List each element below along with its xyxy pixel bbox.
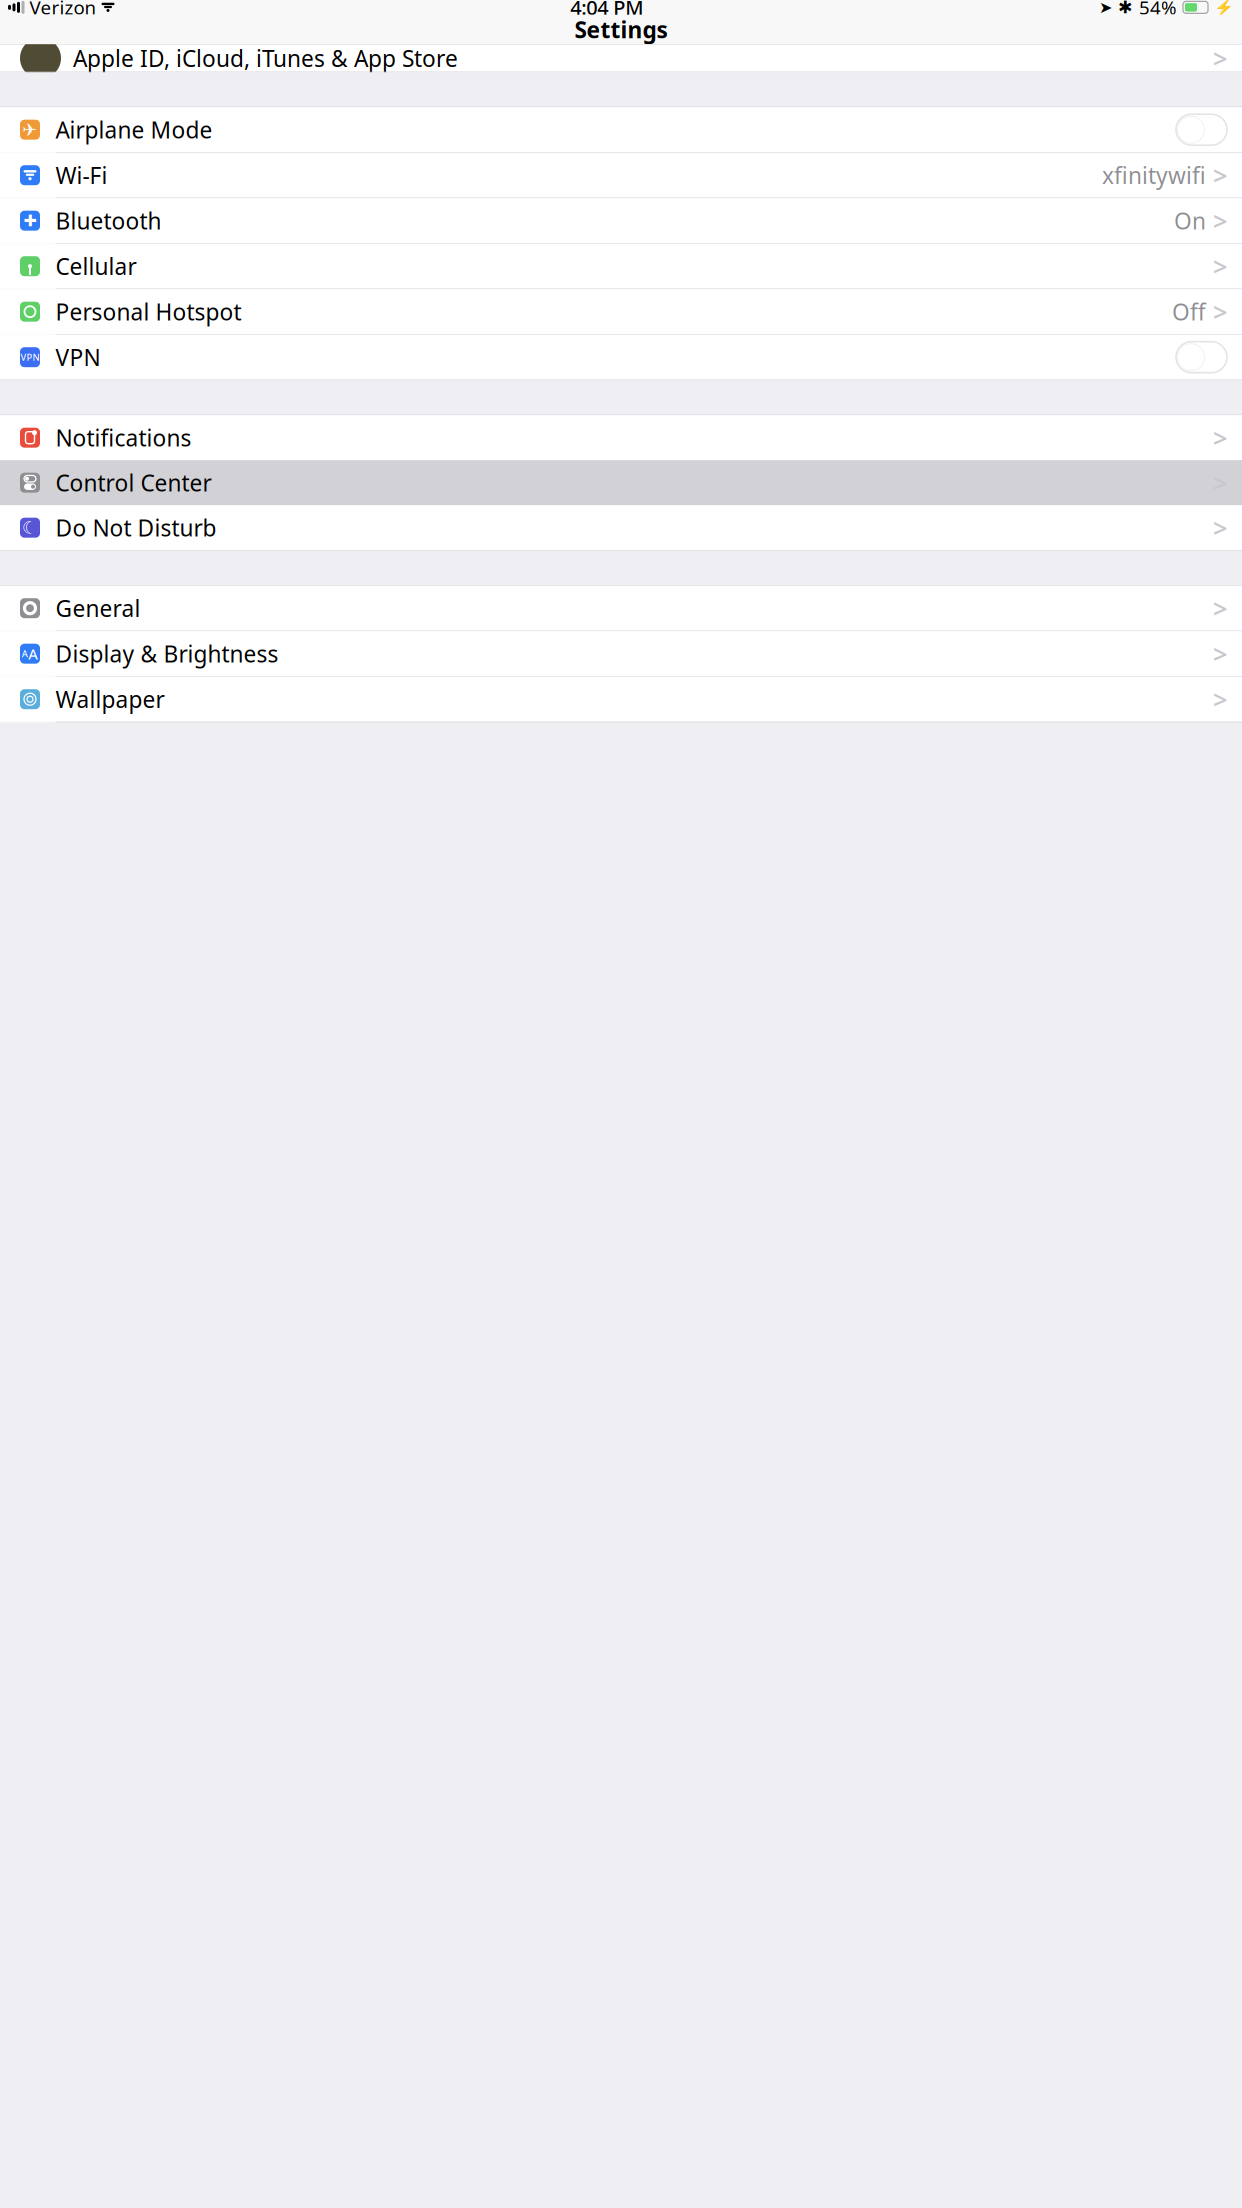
- staticText: Cellular: [55, 251, 136, 281]
- staticText: >: [1213, 591, 1227, 625]
- staticText: Verizon: [29, 0, 96, 20]
- button[interactable]: Personal Hotspot: [0, 289, 1242, 334]
- staticText: General: [55, 593, 140, 623]
- staticText: 54%: [1139, 0, 1177, 20]
- staticText: 4:04 PM: [570, 0, 643, 21]
- button[interactable]: General: [0, 586, 1242, 631]
- staticText: >: [1213, 637, 1227, 670]
- button[interactable]: ☾: [0, 505, 1242, 550]
- staticText: ✱: [1118, 0, 1133, 17]
- staticText: >: [1213, 41, 1227, 75]
- button[interactable]: Wi-Fi: [0, 153, 1242, 198]
- staticText: >: [1213, 682, 1227, 716]
- staticText: ✈: [22, 120, 37, 140]
- staticText: >: [1213, 421, 1227, 454]
- button[interactable]: A: [0, 631, 1242, 676]
- staticText: Airplane Mode: [55, 115, 212, 145]
- staticText: Settings: [574, 14, 667, 44]
- staticText: A: [28, 644, 38, 663]
- staticText: ✚: [23, 212, 36, 230]
- button[interactable]: Control Center: [0, 460, 1242, 505]
- staticText: >: [1213, 295, 1227, 328]
- staticText: ☾: [22, 518, 38, 538]
- staticText: xfinitywifi: [1102, 160, 1206, 190]
- staticText: A: [22, 647, 28, 660]
- staticText: >: [1213, 249, 1227, 283]
- staticText: Wallpaper: [55, 684, 164, 714]
- button[interactable]: Cellular: [0, 244, 1242, 289]
- staticText: Apple ID, iCloud, iTunes & App Store: [73, 43, 458, 73]
- button[interactable]: Wallpaper: [0, 677, 1242, 722]
- staticText: VPN: [55, 342, 100, 372]
- button[interactable]: Notifications: [0, 415, 1242, 460]
- staticText: Personal Hotspot: [55, 297, 241, 327]
- staticText: >: [1213, 511, 1227, 544]
- button[interactable]: VPN: [0, 335, 1242, 380]
- staticText: >: [1213, 158, 1227, 192]
- staticText: ➤: [1099, 0, 1112, 16]
- staticText: >: [1213, 204, 1227, 237]
- button[interactable]: Apple ID, iCloud, iTunes & App Store: [0, 45, 1242, 72]
- button[interactable]: ✈: [0, 107, 1242, 152]
- staticText: Off: [1172, 297, 1206, 327]
- staticText: VPN: [20, 351, 39, 363]
- staticText: Control Center: [55, 468, 211, 498]
- staticText: ⚡: [1214, 0, 1234, 16]
- button[interactable]: ✚: [0, 198, 1242, 243]
- staticText: Bluetooth: [55, 206, 161, 236]
- staticText: Display & Brightness: [55, 639, 278, 669]
- staticText: Notifications: [55, 423, 191, 453]
- staticText: On: [1174, 206, 1206, 236]
- staticText: Do Not Disturb: [55, 513, 216, 543]
- staticText: Wi-Fi: [55, 160, 107, 190]
